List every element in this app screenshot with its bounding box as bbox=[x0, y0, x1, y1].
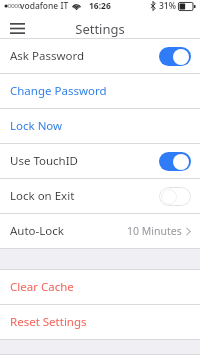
staticText: Ask Password bbox=[10, 48, 85, 64]
staticText: Change Password bbox=[10, 83, 107, 99]
staticText: Use TouchID bbox=[10, 153, 78, 169]
button[interactable]: On bbox=[159, 152, 191, 171]
staticText: 31% bbox=[159, 0, 176, 12]
staticText: Auto-Lock bbox=[10, 223, 64, 239]
button[interactable]: Clear Cache bbox=[0, 270, 200, 304]
button[interactable]: Use TouchID bbox=[0, 144, 200, 178]
button[interactable]: Ask Password bbox=[0, 39, 200, 73]
staticText: 10 Minutes bbox=[127, 224, 182, 238]
button[interactable]: Auto-Lock bbox=[0, 214, 200, 248]
staticText: Settings bbox=[75, 20, 125, 38]
staticText: Lock Now bbox=[10, 118, 63, 134]
staticText: Lock on Exit bbox=[10, 188, 75, 204]
button[interactable]: Menu bbox=[4, 18, 30, 39]
button[interactable]: Lock Now bbox=[0, 109, 200, 143]
button[interactable]: Lock on Exit bbox=[0, 179, 200, 213]
button[interactable]: Change Password bbox=[0, 74, 200, 108]
button[interactable]: Off bbox=[159, 187, 191, 206]
button[interactable]: On bbox=[159, 47, 191, 66]
staticText: Clear Cache bbox=[10, 279, 74, 295]
staticText: Reset Settings bbox=[10, 314, 87, 330]
staticText: vodafone IT bbox=[20, 0, 69, 12]
button[interactable]: Reset Settings bbox=[0, 305, 200, 339]
staticText: 16:26 bbox=[89, 0, 111, 12]
